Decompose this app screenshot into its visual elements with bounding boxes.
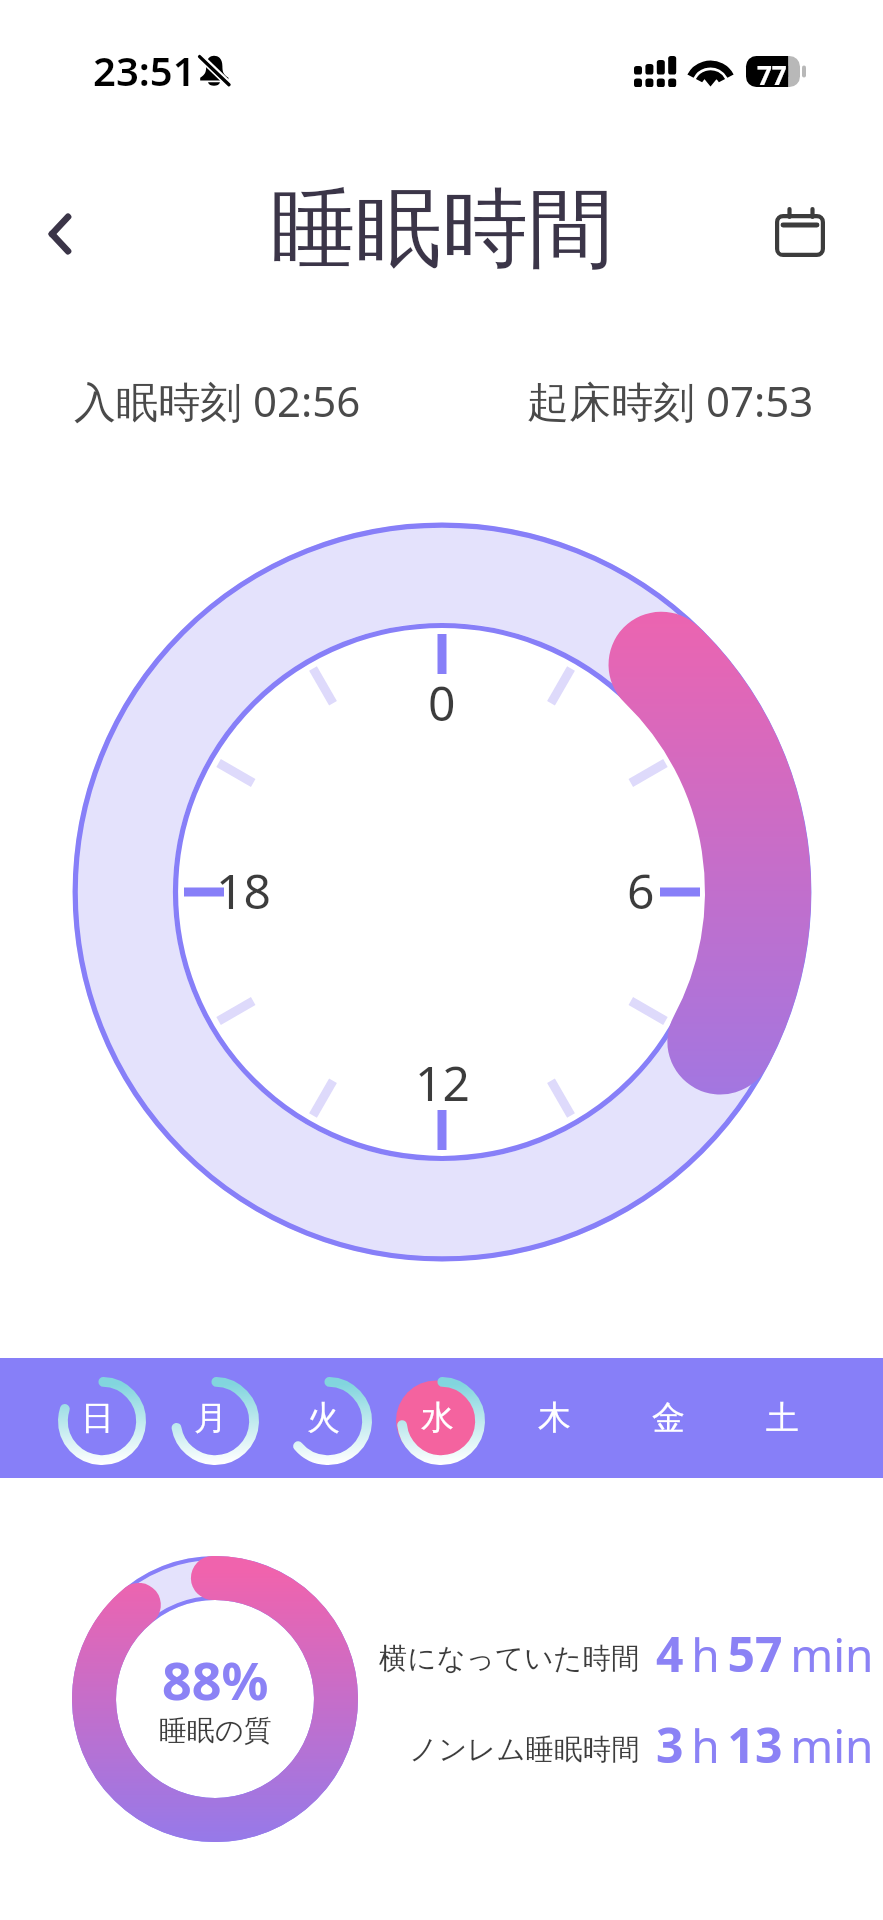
button[interactable]: 金 [611,1358,725,1478]
button[interactable]: 火 [270,1358,383,1478]
button[interactable]: 木 [497,1358,611,1478]
staticText: 入眠時刻 02:56 [74,372,361,429]
staticText: 23:51 [93,43,196,97]
staticText: 火 [307,1397,340,1439]
staticText: 18 [216,858,271,923]
staticText: 起床時刻 07:53 [527,372,814,429]
button[interactable]: 水 [383,1358,497,1478]
button[interactable]: Calendar [769,202,831,264]
staticText: 0 [428,670,456,735]
button[interactable]: 土 [725,1358,839,1478]
staticText: 88% [162,1644,269,1715]
staticText: ノンレム睡眠時間 [409,1732,640,1768]
button[interactable]: 日 [44,1358,157,1478]
staticText: 金 [652,1397,685,1439]
staticText: 日 [81,1397,114,1439]
staticText: 睡眠時間 [270,175,614,283]
button[interactable]: 月 [157,1358,270,1478]
staticText: 12 [415,1050,470,1115]
staticText: 水 [421,1397,454,1439]
button[interactable]: Back [26,200,94,268]
staticText: 木 [538,1397,571,1439]
staticText: 77 [757,57,787,88]
staticText: 4 h 57 min [656,1621,874,1686]
staticText: 月 [194,1397,227,1439]
staticText: 3 h 13 min [656,1712,874,1777]
staticText: 睡眠の質 [159,1713,272,1748]
staticText: 6 [627,858,655,923]
staticText: 横になっていた時間 [379,1641,640,1677]
staticText: 土 [766,1397,799,1439]
